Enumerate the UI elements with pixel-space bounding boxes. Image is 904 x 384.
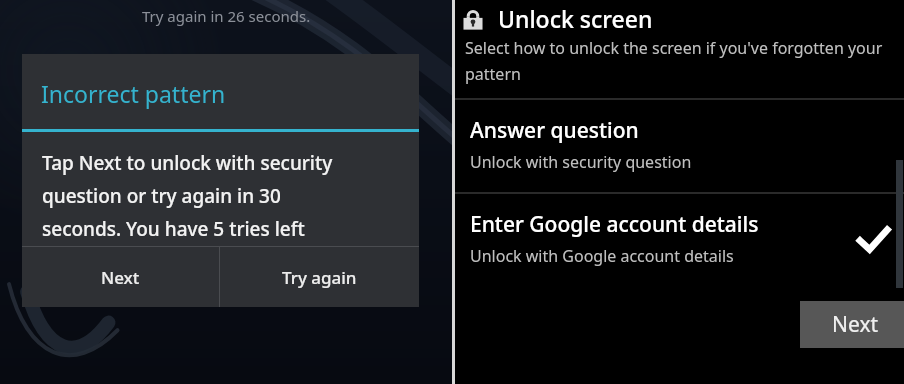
button[interactable]: Enter Google account details: [455, 194, 904, 286]
staticText: Try again in 26 seconds.: [142, 6, 311, 26]
button[interactable]: Answer question: [455, 100, 904, 192]
staticText: Next: [101, 266, 140, 289]
button[interactable]: Try again: [220, 247, 419, 307]
staticText: Answer question: [470, 116, 639, 145]
staticText: seconds. You have 5 tries left: [42, 216, 305, 242]
staticText: question or try again in 30: [42, 183, 281, 209]
staticText: Tap Next to unlock with security: [42, 150, 333, 176]
staticText: Enter Google account details: [470, 210, 759, 239]
staticText: Unlock with Google account details: [470, 245, 734, 267]
staticText: pattern: [465, 63, 521, 85]
staticText: Try again: [282, 266, 357, 289]
staticText: Select how to unlock the screen if you'v…: [465, 37, 883, 59]
staticText: Next: [832, 310, 879, 339]
other: Lock: [459, 5, 487, 33]
button[interactable]: Next: [800, 301, 904, 348]
staticText: Incorrect pattern: [41, 78, 226, 109]
staticText: Unlock with security question: [470, 151, 692, 173]
other: Selected: [856, 223, 890, 257]
button[interactable]: Next: [22, 247, 219, 307]
staticText: Unlock screen: [498, 3, 653, 34]
